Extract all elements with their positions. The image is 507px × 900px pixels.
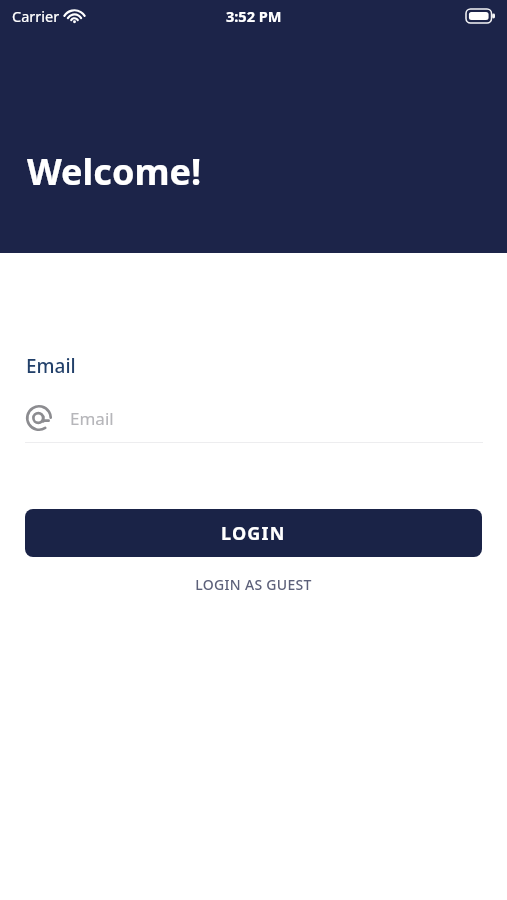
- staticText: LOGIN: [221, 521, 286, 546]
- staticText: LOGIN AS GUEST: [195, 575, 312, 594]
- staticText: 3:52 PM: [226, 6, 282, 26]
- staticText: Email: [26, 353, 76, 379]
- staticText: Carrier: [12, 6, 60, 26]
- button[interactable]: LOGIN AS GUEST: [0, 570, 507, 598]
- button[interactable]: Email: [25, 401, 482, 435]
- staticText: Email: [70, 407, 114, 430]
- staticText: Welcome!: [27, 147, 202, 196]
- button[interactable]: LOGIN: [25, 509, 482, 557]
